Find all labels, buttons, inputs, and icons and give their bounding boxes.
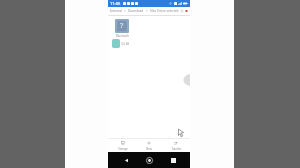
button[interactable]: New (137, 139, 161, 152)
staticText: Transfer (171, 147, 182, 151)
staticText: Storage (118, 147, 128, 151)
staticText: 0 item selected (157, 9, 179, 13)
staticText: New (146, 147, 152, 151)
staticText: 11:06 (110, 1, 121, 6)
button[interactable]: Sort (180, 9, 184, 13)
button[interactable]: Recent apps (167, 154, 179, 166)
button[interactable]: ? (112, 19, 132, 38)
staticText: Download (128, 9, 144, 13)
staticText: Bluetooth (116, 34, 129, 38)
staticText: 9,4 kB (121, 42, 129, 46)
staticText: > (146, 9, 148, 13)
staticText: Internal (110, 9, 122, 13)
staticText: > (124, 9, 126, 13)
staticText: files (150, 9, 157, 13)
button[interactable]: Back (120, 154, 132, 166)
staticText: ? (120, 21, 124, 31)
button[interactable]: Download (128, 9, 144, 13)
button[interactable]: Internal (110, 9, 122, 13)
button[interactable]: 9,4 kB (112, 39, 129, 48)
button[interactable]: Home (143, 154, 155, 166)
button[interactable]: Storage (111, 139, 135, 152)
button[interactable]: Transfer (164, 139, 188, 152)
button[interactable]: Record (185, 9, 188, 13)
